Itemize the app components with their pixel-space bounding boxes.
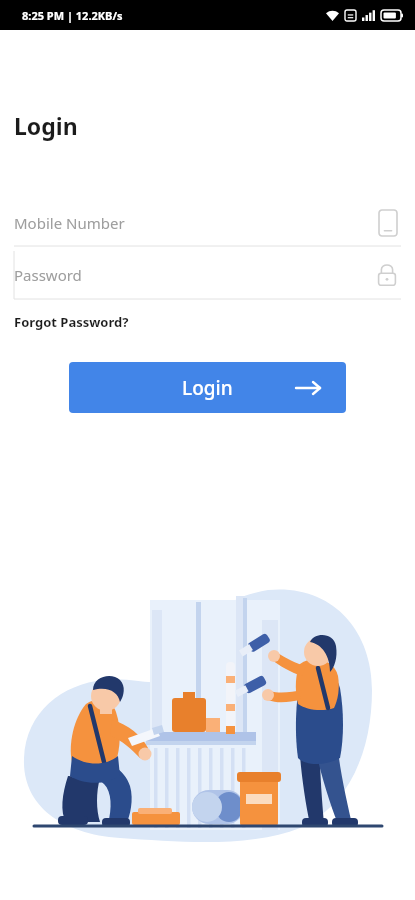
staticText: Login xyxy=(182,375,233,401)
staticText: 8:25 PM | 12.2KB/s xyxy=(22,8,123,23)
staticText: Login xyxy=(14,110,78,141)
staticText: Mobile Number xyxy=(14,213,125,233)
button[interactable]: Forgot Password? xyxy=(14,313,129,331)
staticText: Password xyxy=(14,265,82,285)
button[interactable]: Login xyxy=(69,362,346,413)
button[interactable]: Mobile Number xyxy=(0,199,415,247)
other: Submit xyxy=(296,379,320,397)
staticText: Forgot Password? xyxy=(14,313,129,331)
button[interactable]: Password xyxy=(0,251,415,299)
